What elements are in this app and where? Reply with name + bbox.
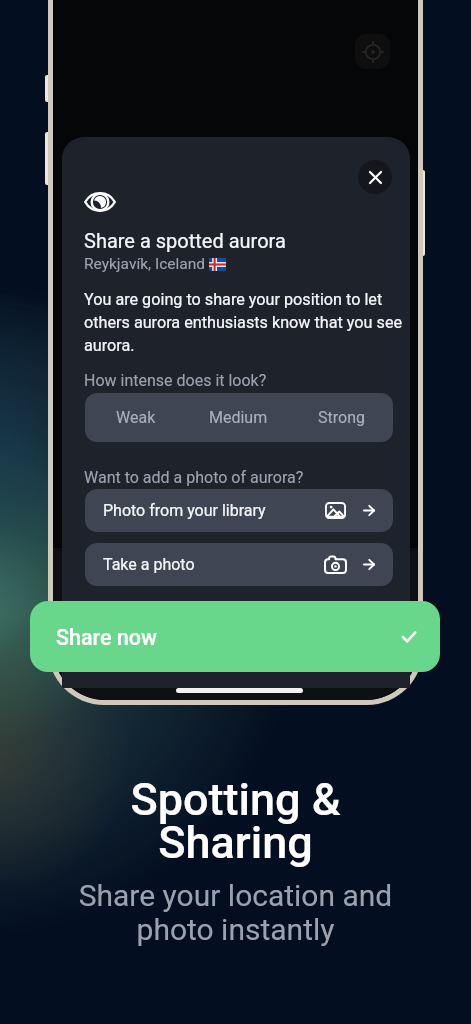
staticText: photo instantly bbox=[0, 912, 471, 947]
staticText: Share now bbox=[56, 625, 157, 650]
button[interactable]: Photo from your library bbox=[85, 489, 393, 532]
staticText: Spotting & bbox=[0, 773, 471, 826]
staticText: How intense does it look? bbox=[84, 371, 267, 390]
button[interactable]: Share now bbox=[30, 601, 440, 672]
staticText: Take a photo bbox=[103, 555, 195, 574]
button[interactable]: Take a photo bbox=[85, 543, 393, 586]
staticText: Share a spotted aurora bbox=[84, 229, 286, 252]
button[interactable]: Locate me bbox=[355, 34, 390, 69]
button[interactable]: Strong bbox=[290, 393, 393, 442]
staticText: You are going to share your position to … bbox=[84, 290, 406, 355]
staticText: Strong bbox=[318, 408, 365, 427]
staticText: Share your location and bbox=[0, 878, 471, 913]
button[interactable]: Close bbox=[358, 160, 392, 194]
staticText: Photo from your library bbox=[103, 501, 266, 520]
button[interactable]: Medium bbox=[187, 393, 290, 442]
staticText: Weak bbox=[116, 408, 156, 427]
staticText: Sharing bbox=[0, 816, 471, 869]
staticText: Reykjavík, Iceland bbox=[84, 255, 209, 273]
button[interactable]: Weak bbox=[85, 393, 187, 442]
staticText: Want to add a photo of aurora? bbox=[84, 468, 304, 487]
staticText: Medium bbox=[209, 408, 268, 427]
